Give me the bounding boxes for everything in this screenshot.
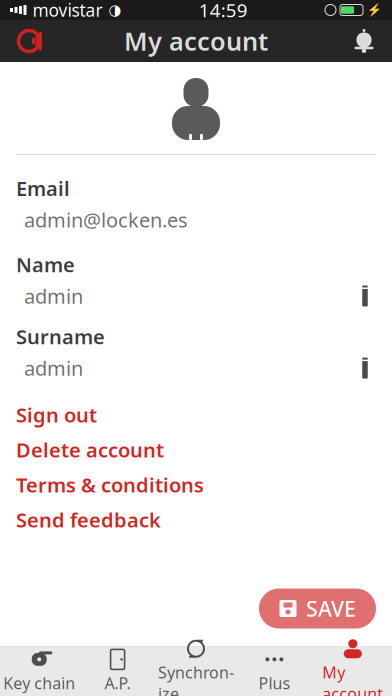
button[interactable]: Plus	[235, 647, 314, 696]
staticText: Synchronize	[158, 662, 234, 696]
staticText: Key chain	[3, 672, 75, 694]
staticText: Sign out	[16, 402, 97, 428]
staticText: Delete account	[16, 437, 164, 463]
staticText: Name	[16, 251, 75, 278]
button[interactable]: A.P.	[78, 647, 157, 696]
button[interactable]: Terms & conditions	[0, 467, 392, 502]
button[interactable]: Key chain	[0, 647, 78, 696]
button[interactable]: Edit Surname	[354, 356, 376, 380]
staticText: My account	[322, 662, 383, 696]
staticText: movistar	[32, 0, 102, 21]
staticText: Email	[16, 175, 70, 202]
staticText: admin	[24, 355, 83, 381]
staticText: Terms & conditions	[16, 472, 204, 498]
staticText: admin	[24, 283, 83, 309]
button[interactable]: Edit Name	[354, 284, 376, 308]
button[interactable]: Send feedback	[0, 502, 392, 537]
staticText: admin@locken.es	[24, 207, 188, 233]
button[interactable]: Sign out	[0, 397, 392, 432]
button[interactable]: Notifications	[336, 28, 392, 54]
staticText: Send feedback	[16, 507, 161, 533]
staticText: ◑	[108, 2, 121, 18]
button[interactable]: SAVE	[259, 588, 376, 628]
staticText: ⚡	[367, 3, 382, 17]
staticText: My account	[124, 24, 268, 58]
staticText: Surname	[16, 323, 105, 350]
button[interactable]: Synchronize	[157, 647, 235, 696]
staticText: 14:59	[199, 0, 248, 22]
staticText: SAVE	[306, 594, 356, 623]
button[interactable]: Locken home	[0, 26, 58, 56]
staticText: A.P.	[105, 672, 131, 694]
button[interactable]: My account	[314, 647, 392, 696]
staticText: Plus	[258, 672, 290, 694]
button[interactable]: Delete account	[0, 432, 392, 467]
